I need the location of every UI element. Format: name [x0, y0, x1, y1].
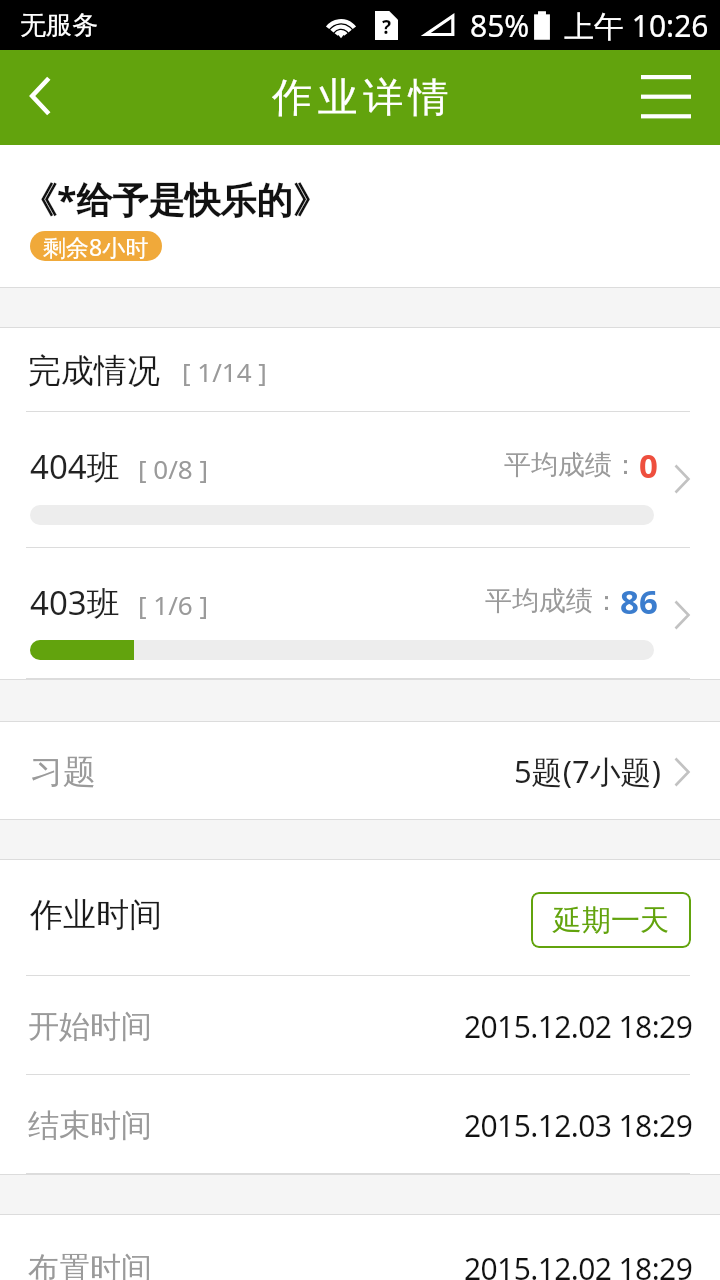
staticText: [ 0/8 ]	[138, 451, 209, 486]
staticText: 《*给予是快乐的》	[21, 175, 329, 224]
staticText: 完成情况	[28, 350, 160, 392]
staticText: 剩余8小时	[43, 231, 149, 261]
button[interactable]: 404班	[0, 412, 720, 548]
staticText: 平均成绩：	[504, 448, 639, 482]
button[interactable]: 习题	[0, 722, 720, 819]
staticText: [ 1/14 ]	[182, 354, 267, 389]
staticText: 85%	[470, 5, 530, 46]
staticText: 2015.12.02 18:29	[464, 1248, 693, 1280]
staticText: 作业时间	[30, 894, 162, 936]
button[interactable]: 布置时间	[0, 1215, 720, 1280]
staticText: 5题(7小题)	[514, 750, 662, 792]
staticText: 上午 10:26	[564, 5, 709, 46]
button[interactable]: 开始时间	[0, 976, 720, 1075]
staticText: ?	[382, 14, 392, 40]
staticText: 2015.12.02 18:29	[464, 1006, 693, 1047]
button[interactable]: 403班	[0, 548, 720, 679]
staticText: 习题	[30, 751, 96, 793]
button[interactable]: 结束时间	[0, 1075, 720, 1174]
button[interactable]: Back	[0, 50, 78, 145]
staticText: 2015.12.03 18:29	[464, 1105, 693, 1146]
button[interactable]: Menu	[611, 50, 720, 145]
staticText: 0	[639, 443, 658, 488]
staticText: 延期一天	[553, 902, 669, 939]
staticText: 开始时间	[28, 1007, 152, 1046]
staticText: 无服务	[20, 9, 98, 42]
button[interactable]: 延期一天	[531, 892, 691, 948]
staticText: 403班	[30, 580, 120, 625]
staticText: 布置时间	[28, 1249, 152, 1280]
staticText: 平均成绩：	[485, 584, 620, 618]
staticText: 结束时间	[28, 1106, 152, 1145]
staticText: 404班	[30, 444, 120, 489]
staticText: 作业详情	[272, 72, 455, 122]
staticText: 86	[620, 579, 658, 624]
staticText: [ 1/6 ]	[138, 587, 209, 622]
